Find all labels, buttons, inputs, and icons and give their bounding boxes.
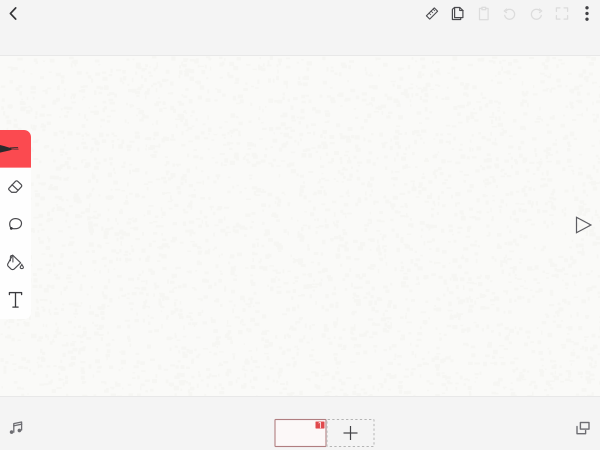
button[interactable]: Layers xyxy=(568,413,598,443)
button[interactable]: Paste xyxy=(472,0,496,27)
button[interactable]: Ruler xyxy=(420,0,444,27)
button[interactable]: Add frame xyxy=(327,419,374,446)
button[interactable]: Text xyxy=(0,281,31,319)
button[interactable]: Full screen xyxy=(550,0,574,27)
button[interactable]: Undo xyxy=(498,0,522,27)
button[interactable]: Play xyxy=(569,210,599,240)
button[interactable]: Audio xyxy=(1,413,31,443)
button[interactable]: Select xyxy=(0,206,31,243)
button[interactable]: Duplicate xyxy=(446,0,470,27)
button[interactable]: Frame 1 xyxy=(275,419,326,446)
button[interactable]: Eraser xyxy=(0,168,31,206)
staticText: 1 xyxy=(317,419,322,431)
button[interactable]: Fill xyxy=(0,243,31,281)
button[interactable]: Redo xyxy=(524,0,548,27)
button[interactable]: Back xyxy=(1,0,25,27)
button[interactable]: Brush xyxy=(0,130,31,168)
button[interactable]: More options xyxy=(575,0,599,27)
